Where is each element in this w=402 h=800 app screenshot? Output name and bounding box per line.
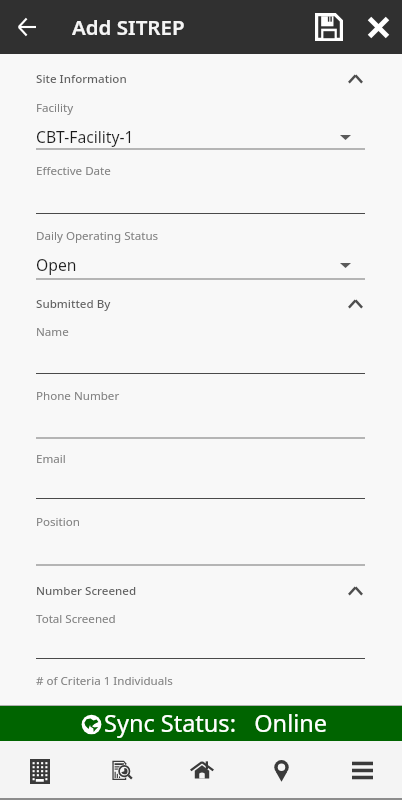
staticText: Number Screened bbox=[36, 583, 137, 599]
staticText: Phone Number bbox=[36, 388, 120, 404]
staticText: Name bbox=[36, 324, 69, 340]
staticText: Site Information bbox=[36, 71, 127, 87]
button[interactable]: Open bbox=[0, 251, 402, 277]
staticText: # of Criteria 1 Individuals bbox=[36, 673, 173, 689]
button[interactable]: Site Information bbox=[0, 64, 402, 94]
staticText: Position bbox=[36, 514, 80, 530]
button[interactable]: Map bbox=[249, 741, 313, 797]
button[interactable]: Submitted By bbox=[0, 289, 402, 319]
button[interactable]: Close bbox=[354, 0, 402, 54]
staticText: Daily Operating Status bbox=[36, 228, 159, 244]
button[interactable]: Sync Status: Online bbox=[0, 706, 402, 741]
button[interactable]: Reports bbox=[90, 741, 154, 797]
staticText: Sync Status: Online bbox=[104, 707, 328, 739]
button[interactable]: Back bbox=[8, 0, 46, 54]
button[interactable]: Home bbox=[170, 741, 234, 797]
staticText: Email bbox=[36, 451, 66, 467]
button[interactable]: CBT-Facility-1 bbox=[0, 123, 402, 149]
staticText: CBT-Facility-1 bbox=[36, 126, 134, 147]
staticText: Effective Date bbox=[36, 163, 111, 179]
staticText: Submitted By bbox=[36, 296, 111, 312]
button[interactable]: Menu bbox=[330, 741, 394, 797]
button[interactable]: Save bbox=[303, 0, 354, 54]
staticText: Add SITREP bbox=[72, 13, 185, 41]
staticText: Open bbox=[36, 254, 77, 275]
button[interactable]: Facilities bbox=[8, 741, 72, 797]
staticText: Total Screened bbox=[36, 611, 116, 627]
button[interactable]: Number Screened bbox=[0, 576, 402, 606]
staticText: Facility bbox=[36, 100, 74, 116]
